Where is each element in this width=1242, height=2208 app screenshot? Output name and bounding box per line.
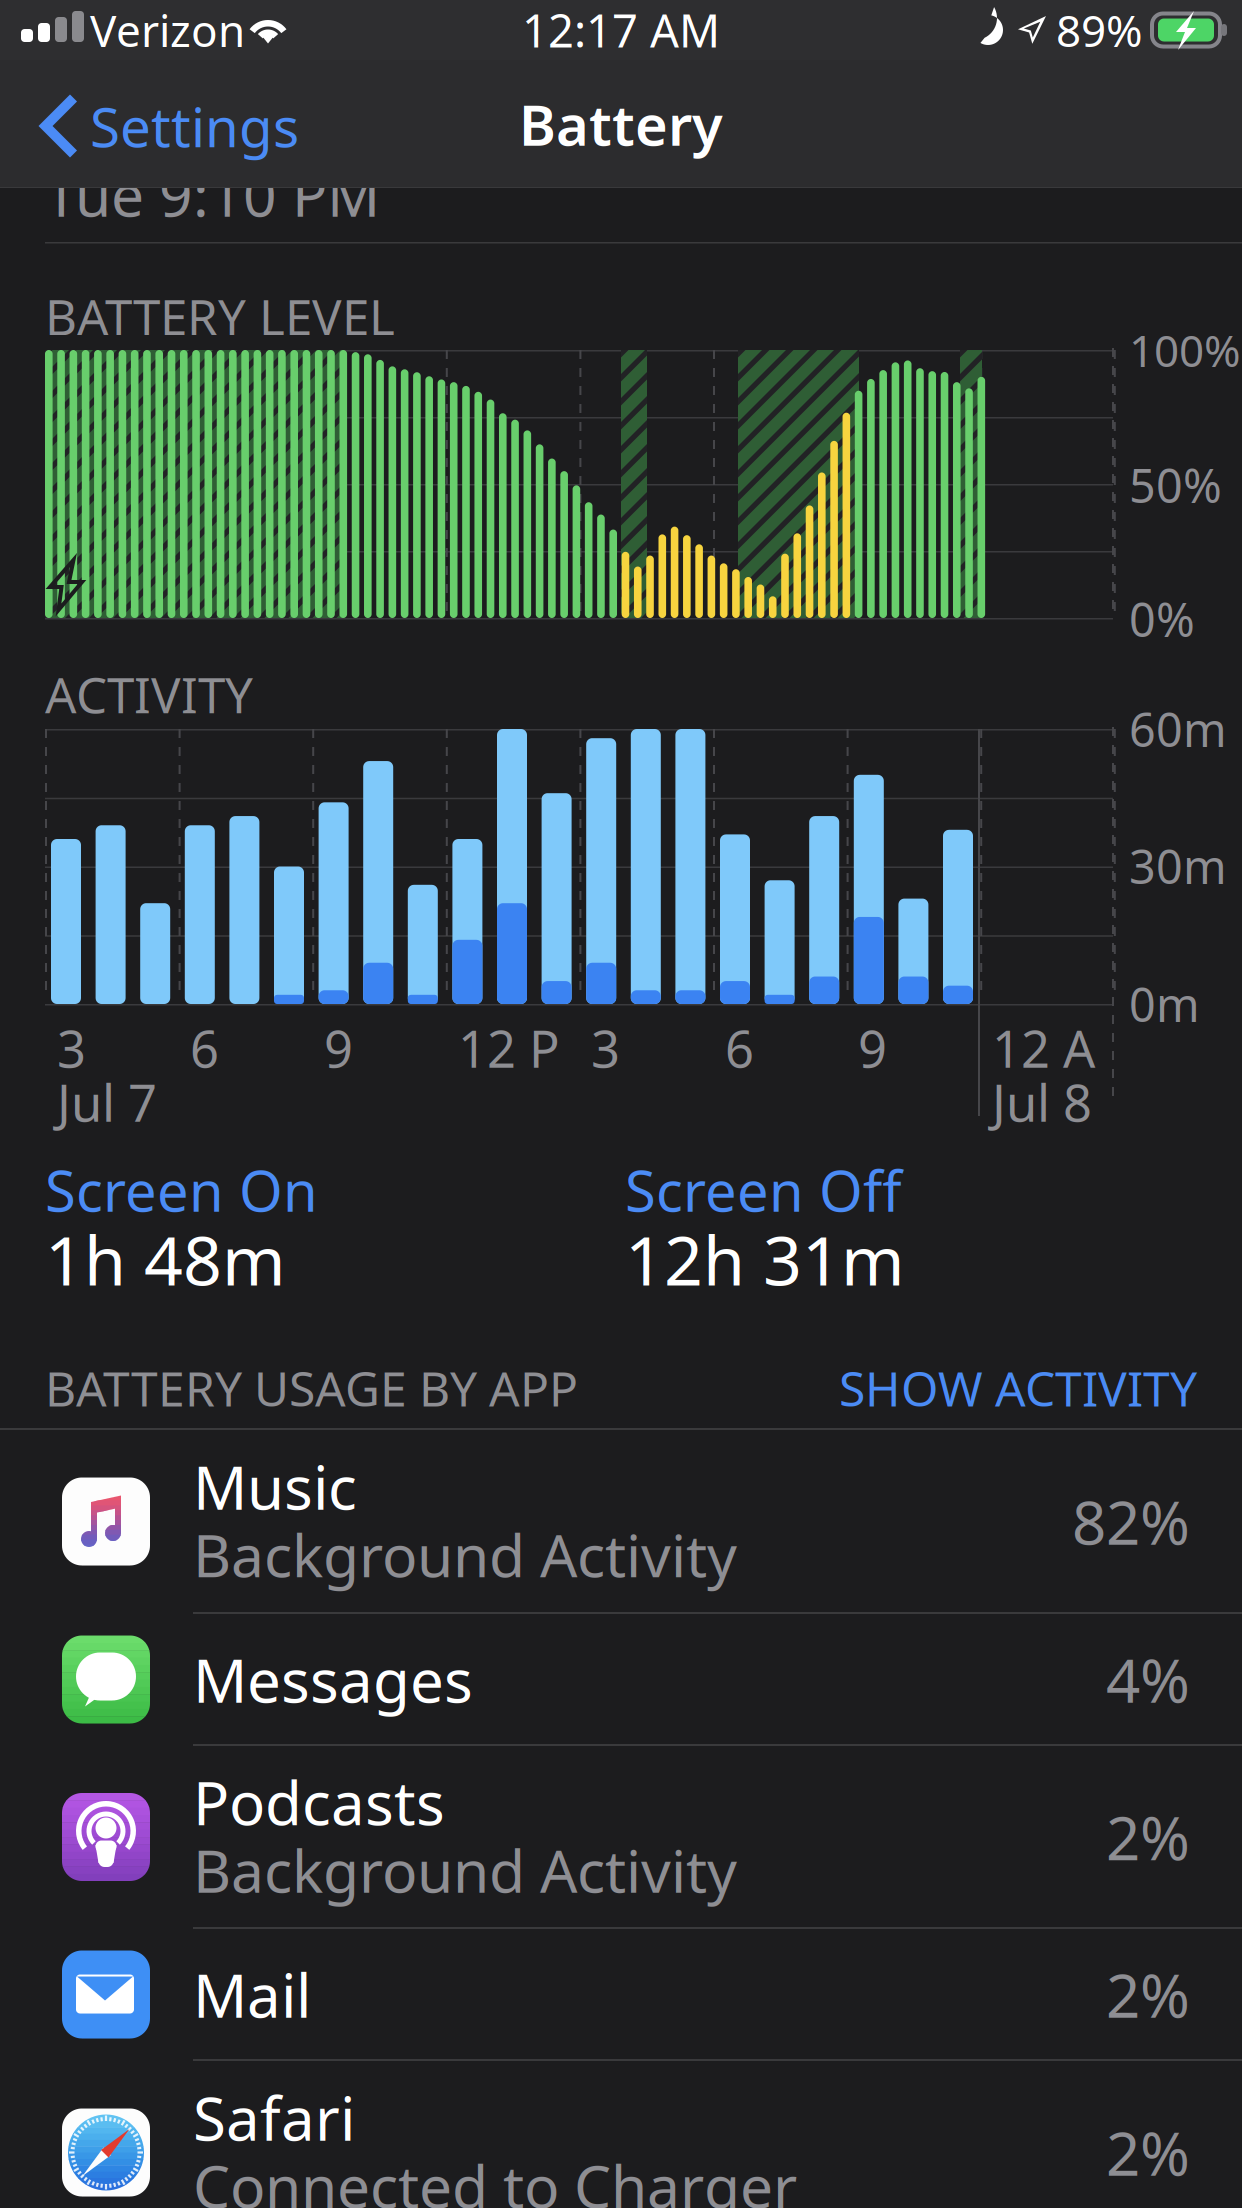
staticText: Background Activity (193, 1515, 737, 1593)
staticText: 6 (725, 1014, 754, 1082)
staticText: 2% (1106, 1955, 1190, 2034)
staticText: 9 (858, 1014, 887, 1082)
staticText: ACTIVITY (45, 661, 253, 727)
button[interactable]: Messages (0, 0, 1242, 2208)
staticText: SHOW ACTIVITY (839, 1356, 1197, 1420)
staticText: 82% (1072, 1482, 1190, 1561)
staticText: 60m (1129, 698, 1227, 760)
staticText: Background Activity (193, 1831, 737, 1909)
staticText: 12 A (992, 1014, 1095, 1082)
staticText: Messages (193, 1640, 473, 1719)
staticText: Jul 8 (992, 1068, 1092, 1136)
staticText: Screen Off (625, 1153, 902, 1227)
staticText: Safari (193, 2078, 355, 2157)
staticText: BATTERY USAGE BY APP (45, 1356, 578, 1420)
staticText: 30m (1129, 835, 1227, 897)
button[interactable]: Settings (0, 60, 300, 188)
staticText: Screen On (45, 1153, 318, 1227)
staticText: Settings (90, 90, 299, 162)
button[interactable]: Safari (0, 0, 1242, 2208)
staticText: Verizon (90, 1, 245, 59)
button[interactable]: Podcasts (0, 0, 1242, 2208)
staticText: Battery (519, 87, 723, 161)
staticText: 4% (1106, 1640, 1190, 1719)
staticText: Tue 9:10 PM (45, 155, 380, 233)
staticText: Music (193, 1447, 357, 1526)
staticText: 0% (1129, 588, 1195, 650)
staticText: 89% (1056, 1, 1143, 59)
staticText: Mail (193, 1955, 311, 2034)
button[interactable]: SHOW ACTIVITY (0, 0, 1242, 2208)
staticText: 12:17 AM (522, 0, 720, 60)
button[interactable]: Mail (0, 0, 1242, 2208)
staticText: 0m (1129, 973, 1200, 1035)
staticText: 3 (591, 1014, 620, 1082)
staticText: Jul 7 (57, 1068, 157, 1136)
staticText: Podcasts (193, 1762, 445, 1842)
button[interactable]: Music (0, 0, 1242, 2208)
staticText: 50% (1129, 454, 1222, 516)
staticText: 1h 48m (45, 1214, 286, 1304)
staticText: 2% (1106, 2113, 1190, 2192)
staticText: 2% (1106, 1797, 1190, 1877)
staticText: 100% (1129, 321, 1241, 379)
button[interactable]: Screen On (0, 0, 1242, 2208)
staticText: 3 (57, 1014, 86, 1082)
staticText: 9 (324, 1014, 353, 1082)
button[interactable]: Screen Off (0, 0, 1242, 2208)
staticText: BATTERY LEVEL (45, 283, 395, 349)
staticText: Connected to Charger (193, 2146, 797, 2208)
staticText: 12h 31m (625, 1214, 905, 1304)
staticText: 12 P (458, 1014, 560, 1082)
staticText: 6 (190, 1014, 219, 1082)
